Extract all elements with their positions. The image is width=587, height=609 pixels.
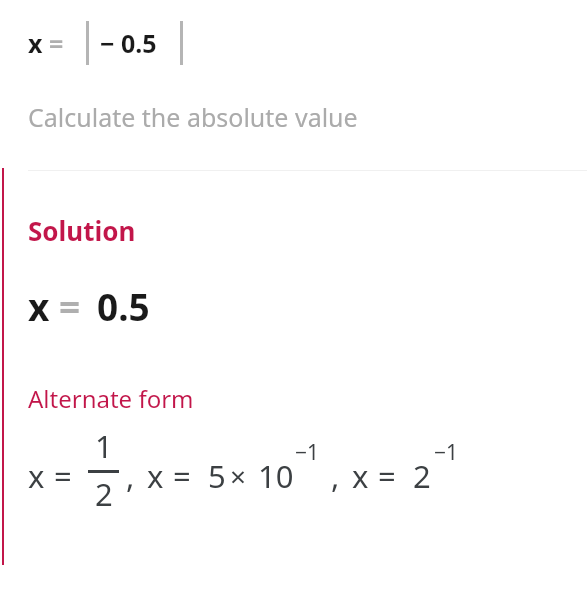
staticText: − 0.5 xyxy=(100,26,157,60)
staticText: 5 xyxy=(208,455,226,497)
staticText: , xyxy=(331,455,340,497)
staticText: 0.5 xyxy=(97,281,150,331)
staticText: × xyxy=(230,457,247,495)
button[interactable]: Alternate form xyxy=(0,380,587,416)
staticText: = xyxy=(54,455,72,497)
staticText: Calculate the absolute value xyxy=(28,100,358,134)
staticText: x xyxy=(352,455,369,497)
staticText: = xyxy=(378,455,396,497)
staticText: x xyxy=(28,26,43,60)
staticText: 10 xyxy=(258,455,294,497)
staticText: 2 xyxy=(95,473,113,515)
staticText: = xyxy=(173,455,191,497)
staticText: = xyxy=(59,281,81,331)
staticText: x xyxy=(28,455,45,497)
button[interactable]: Solution xyxy=(0,210,587,250)
staticText: −1 xyxy=(434,438,459,467)
staticText: x xyxy=(28,281,50,331)
staticText: , xyxy=(126,455,135,497)
staticText: x xyxy=(147,455,164,497)
staticText: 1 xyxy=(95,425,113,467)
staticText: Solution xyxy=(28,213,136,248)
staticText: 2 xyxy=(413,455,431,497)
staticText: = xyxy=(49,26,64,60)
staticText: −1 xyxy=(295,438,320,467)
button[interactable]: Calculate the absolute value xyxy=(0,96,587,136)
staticText: Alternate form xyxy=(28,382,194,415)
